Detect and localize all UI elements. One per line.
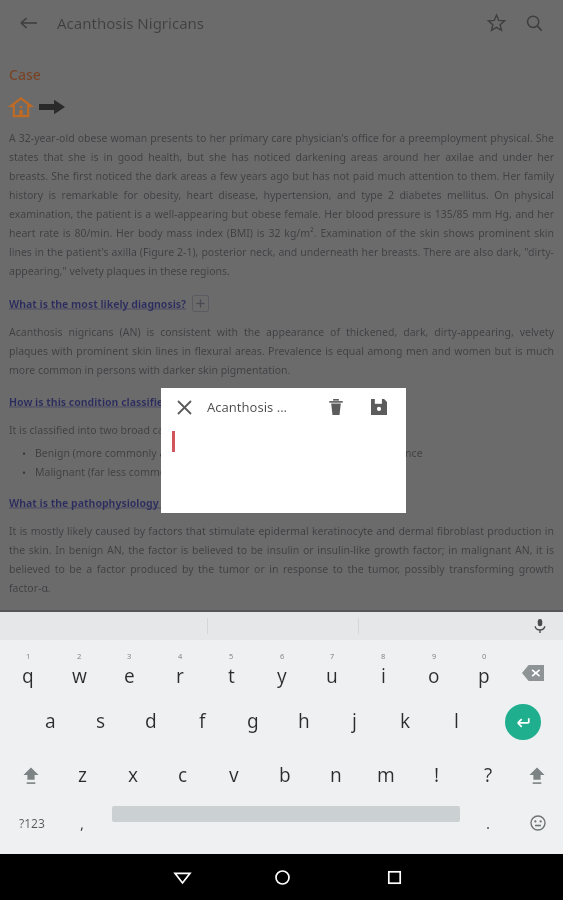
staticText: j <box>352 708 357 734</box>
button[interactable]: 3 <box>105 644 153 696</box>
staticText: e <box>124 663 135 689</box>
staticText: It is mostly likely caused by factors th… <box>9 524 554 595</box>
button[interactable]: ?123 <box>4 800 60 846</box>
staticText: p <box>478 663 490 689</box>
button[interactable]: b <box>261 752 309 798</box>
staticText: t <box>228 663 235 689</box>
button[interactable]: x <box>109 752 157 798</box>
staticText: d <box>145 708 157 734</box>
staticText: Acanthosis nigricans (AN) is consistent … <box>9 325 554 377</box>
button[interactable]: Search <box>515 4 553 42</box>
button[interactable]: a <box>26 698 74 744</box>
button[interactable]: Backspace <box>512 654 554 692</box>
button[interactable]: 9 <box>410 644 458 696</box>
button[interactable]: Add note <box>180 393 197 410</box>
button[interactable]: z <box>58 752 106 798</box>
button[interactable]: ! <box>413 752 461 798</box>
button[interactable]: v <box>210 752 258 798</box>
button[interactable]: Add note <box>192 295 209 312</box>
staticText: A 32-year-old obese woman presents to he… <box>9 131 554 278</box>
button[interactable]: 8 <box>359 644 407 696</box>
button[interactable]: d <box>127 698 175 744</box>
button[interactable]: . <box>468 800 508 846</box>
button[interactable]: Close <box>171 394 197 420</box>
staticText: s <box>96 708 106 734</box>
staticText: ! <box>434 762 440 788</box>
button[interactable]: How is this condition classified? <box>9 393 563 410</box>
button[interactable]: 6 <box>258 644 306 696</box>
button[interactable]: Home <box>250 854 314 900</box>
staticText: 1 <box>26 651 31 661</box>
button[interactable]: Shift <box>8 752 54 798</box>
staticText: , <box>80 813 85 833</box>
staticText: . <box>486 813 491 833</box>
staticText: 3 <box>127 651 132 661</box>
staticText: w <box>72 663 87 689</box>
staticText: How is this condition classified? <box>9 395 175 409</box>
button[interactable]: ? <box>464 752 512 798</box>
button[interactable]: h <box>280 698 328 744</box>
staticText: c <box>178 762 188 788</box>
button[interactable]: Shift <box>514 752 560 798</box>
staticText: u <box>326 663 338 689</box>
staticText: 4 <box>178 651 183 661</box>
staticText: What is the pathophysiology of this cond… <box>9 496 252 510</box>
staticText: • <box>22 446 27 461</box>
button[interactable] <box>161 426 406 513</box>
staticText: z <box>78 762 87 788</box>
button[interactable]: Voice input <box>527 613 553 639</box>
button[interactable]: n <box>312 752 360 798</box>
staticText: Benign (more commonly associated with ob… <box>35 446 423 460</box>
staticText: g <box>247 708 259 734</box>
staticText: 6 <box>280 651 285 661</box>
button[interactable]: Delete <box>321 392 351 422</box>
staticText: • <box>22 465 27 480</box>
button[interactable]: Bookmark <box>477 4 515 42</box>
button[interactable]: Enter <box>505 704 541 740</box>
button[interactable]: What is the most likely diagnosis? <box>9 295 563 312</box>
button[interactable]: m <box>362 752 410 798</box>
button[interactable]: Back <box>10 5 46 41</box>
button[interactable]: Save <box>365 393 393 421</box>
staticText: o <box>428 663 440 689</box>
button[interactable]: Home <box>9 95 33 119</box>
staticText: ? <box>484 762 493 788</box>
button[interactable]: 5 <box>207 644 255 696</box>
button[interactable]: k <box>381 698 429 744</box>
button[interactable]: 7 <box>308 644 356 696</box>
staticText: It is classified into two broad categori… <box>9 423 554 437</box>
staticText: 7 <box>330 651 335 661</box>
staticText: n <box>330 762 342 788</box>
button[interactable]: Emoji <box>518 800 558 846</box>
button[interactable]: s <box>77 698 125 744</box>
button[interactable]: What is the pathophysiology of this cond… <box>9 494 563 511</box>
button[interactable]: j <box>330 698 378 744</box>
staticText: Case <box>9 65 41 84</box>
staticText: v <box>229 762 239 788</box>
staticText: b <box>279 762 291 788</box>
staticText: Acanthosis ... <box>207 398 288 416</box>
staticText: r <box>176 663 184 689</box>
staticText: i <box>381 663 386 689</box>
button[interactable]: Recents <box>362 854 426 900</box>
button[interactable]: 1 <box>4 644 52 696</box>
button[interactable]: l <box>432 698 480 744</box>
button[interactable]: g <box>229 698 277 744</box>
button[interactable]: c <box>159 752 207 798</box>
staticText: y <box>277 663 287 689</box>
staticText: ?123 <box>19 815 45 831</box>
staticText: m <box>377 762 395 788</box>
staticText: 0 <box>482 651 487 661</box>
staticText: What is the most likely diagnosis? <box>9 297 187 311</box>
button[interactable]: 2 <box>55 644 103 696</box>
button[interactable]: f <box>178 698 226 744</box>
button[interactable]: , <box>62 800 102 846</box>
staticText: 2 <box>77 651 82 661</box>
button[interactable]: 4 <box>156 644 204 696</box>
staticText: a <box>45 708 56 734</box>
button[interactable]: Back <box>150 854 214 900</box>
button[interactable]: 0 <box>460 644 508 696</box>
staticText: 8 <box>381 651 386 661</box>
